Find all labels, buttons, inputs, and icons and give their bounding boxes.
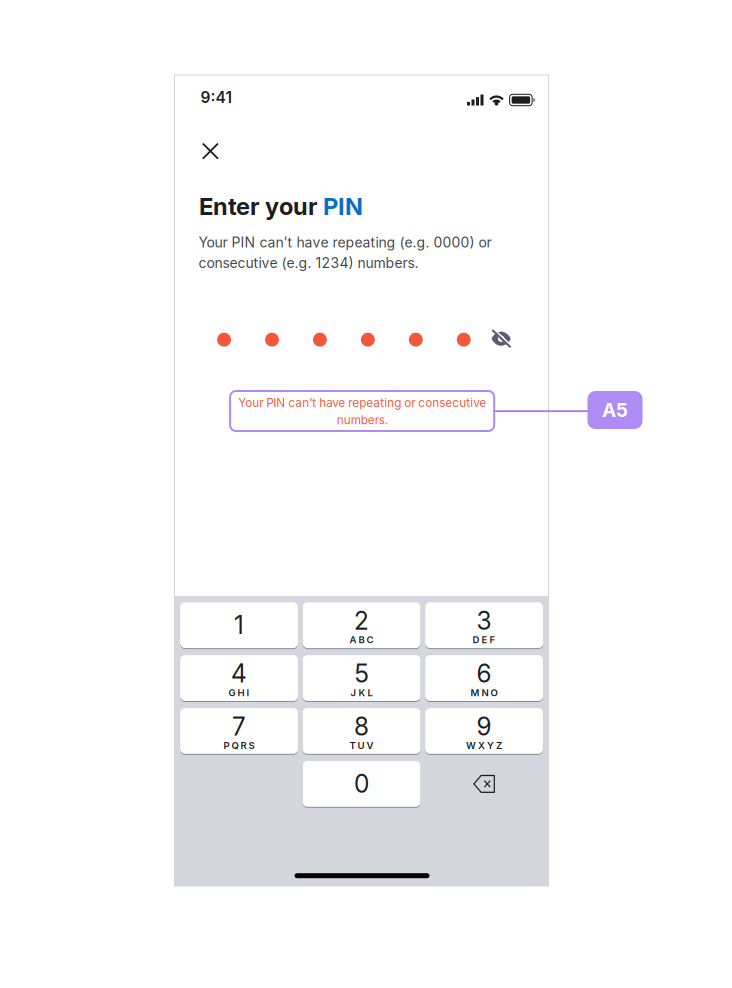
staticText: 9	[477, 712, 492, 741]
button[interactable]: Show PIN	[487, 325, 515, 352]
staticText: 0	[354, 769, 369, 799]
staticText: Enter your	[199, 192, 323, 221]
staticText: W X Y Z	[466, 740, 502, 751]
button[interactable]: 4	[180, 655, 298, 701]
staticText: D E F	[473, 634, 496, 646]
staticText: 2	[354, 606, 369, 636]
button[interactable]: Close	[193, 134, 227, 168]
button[interactable]: 6	[425, 655, 543, 701]
staticText: Your PIN can’t have repeating or consecu…	[238, 396, 486, 427]
button[interactable]: 0	[303, 761, 421, 807]
staticText: A B C	[350, 634, 374, 646]
staticText: 8	[354, 712, 369, 741]
staticText: 4	[231, 659, 247, 689]
staticText: 7	[232, 712, 246, 741]
button[interactable]: 1	[180, 602, 298, 648]
button[interactable]: Delete	[425, 761, 543, 807]
staticText: G H I	[229, 687, 250, 698]
staticText: P Q R S	[224, 740, 255, 751]
button[interactable]: 8	[303, 708, 421, 754]
staticText: 1	[234, 610, 244, 640]
staticText: PIN	[323, 192, 363, 221]
staticText: Your PIN can’t have repeating (e.g. 0000…	[198, 234, 491, 271]
staticText: 3	[477, 606, 492, 636]
button[interactable]: 7	[180, 708, 298, 754]
button[interactable]: 3	[425, 602, 543, 648]
staticText: J K L	[351, 687, 373, 698]
staticText: A5	[602, 398, 628, 422]
staticText: M N O	[471, 687, 498, 698]
staticText: T U V	[350, 740, 374, 751]
button[interactable]: 2	[303, 602, 421, 648]
staticText: 5	[355, 659, 369, 689]
staticText: 9:41	[200, 88, 232, 107]
button[interactable]: 9	[425, 708, 543, 754]
button[interactable]: 5	[303, 655, 421, 701]
staticText: 6	[477, 659, 492, 689]
